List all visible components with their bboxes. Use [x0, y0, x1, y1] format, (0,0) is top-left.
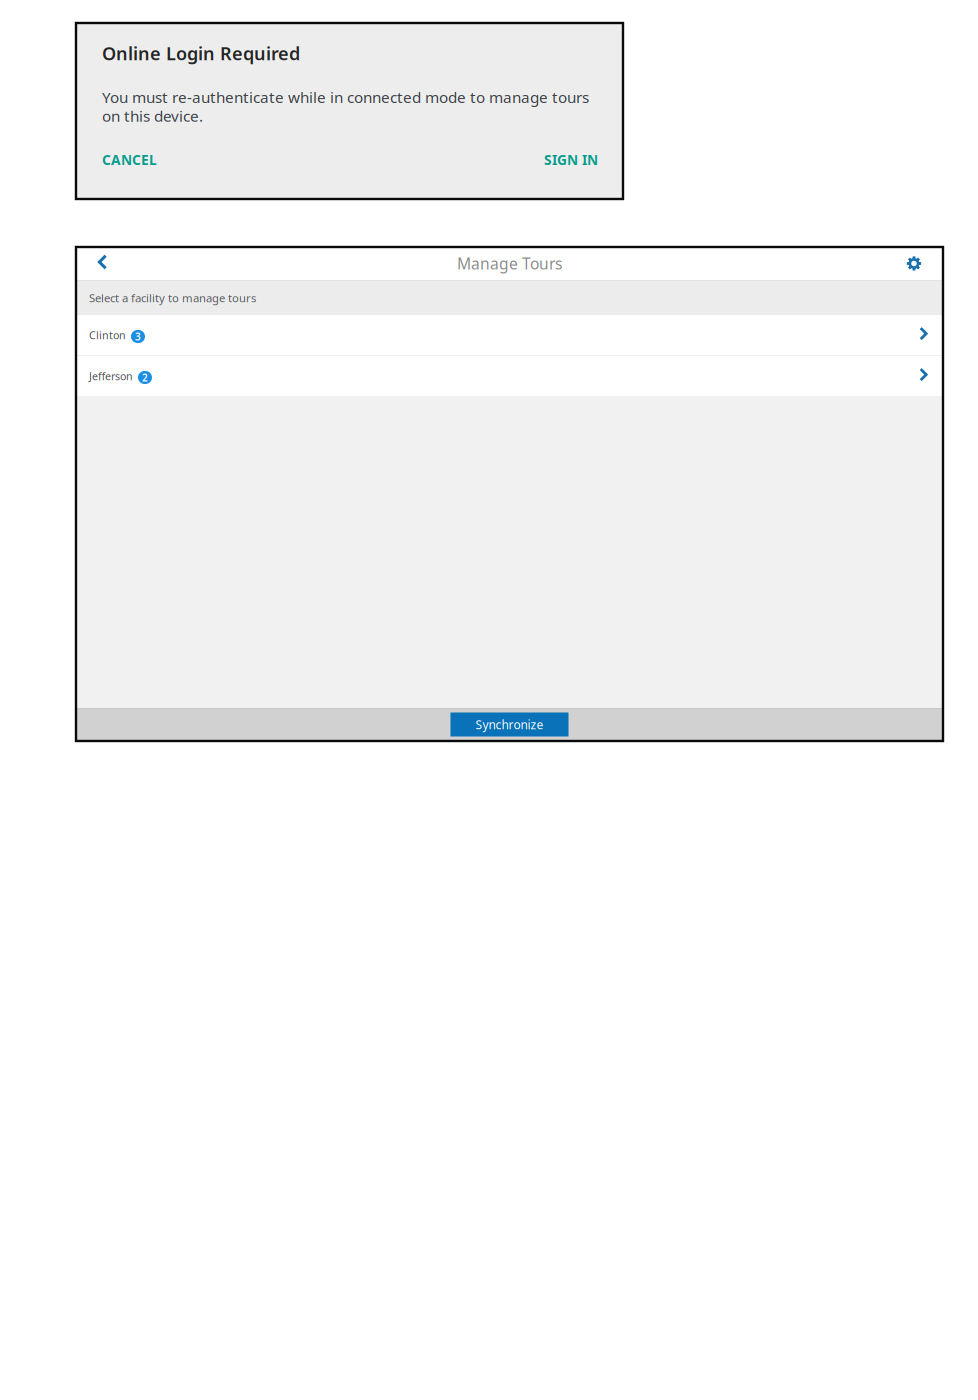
button[interactable]: CANCEL — [102, 150, 157, 169]
staticText: Jefferson — [89, 369, 133, 383]
staticText: Synchronize — [475, 716, 543, 733]
staticText: on this device. — [102, 105, 203, 126]
staticText: CANCEL — [102, 150, 157, 169]
staticText: Clinton — [89, 328, 126, 342]
staticText: Online Login Required — [102, 41, 300, 66]
staticText: 3 — [135, 330, 141, 343]
button[interactable]: Back — [81, 246, 127, 280]
staticText: You must re-authenticate while in connec… — [102, 87, 589, 107]
button[interactable]: Synchronize — [450, 712, 568, 736]
staticText: 2 — [142, 371, 148, 384]
button[interactable]: Clinton — [76, 315, 943, 355]
staticText: SIGN IN — [544, 150, 598, 169]
button[interactable]: SIGN IN — [544, 150, 598, 169]
staticText: Manage Tours — [457, 253, 562, 274]
button[interactable]: Jefferson — [76, 356, 943, 396]
staticText: Select a facility to manage tours — [89, 290, 256, 306]
button[interactable]: Settings — [891, 246, 937, 280]
